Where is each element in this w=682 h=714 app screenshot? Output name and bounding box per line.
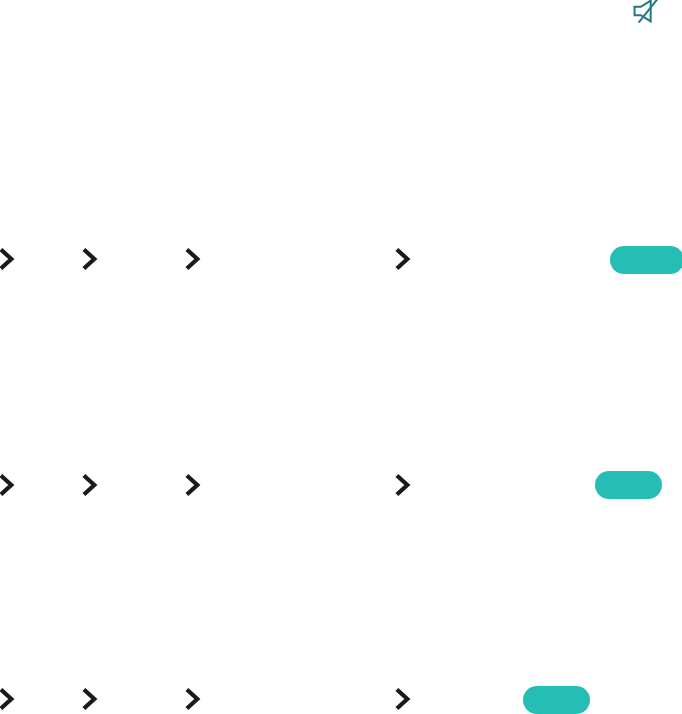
- button[interactable]: Expand: [394, 245, 412, 273]
- button[interactable]: Expand: [394, 471, 412, 499]
- button[interactable]: Action: [595, 471, 662, 499]
- button[interactable]: Action: [523, 686, 590, 714]
- button[interactable]: Expand: [81, 685, 99, 713]
- button[interactable]: Mute: [633, 0, 659, 24]
- button[interactable]: Expand: [184, 685, 202, 713]
- button[interactable]: Expand: [0, 685, 16, 713]
- button[interactable]: Expand: [0, 471, 16, 499]
- button[interactable]: Expand: [81, 471, 99, 499]
- button[interactable]: Expand: [184, 245, 202, 273]
- button[interactable]: Expand: [394, 685, 412, 713]
- button[interactable]: Expand: [81, 245, 99, 273]
- button[interactable]: Action: [610, 246, 682, 274]
- button[interactable]: Expand: [184, 471, 202, 499]
- button[interactable]: Expand: [0, 245, 16, 273]
